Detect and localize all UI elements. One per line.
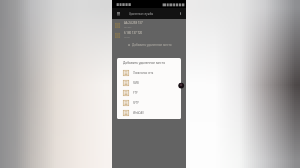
staticText: Добавить удаленное место: [132, 43, 172, 47]
staticText: Локальная сеть: [133, 71, 154, 75]
staticText: AA 24 258 137: [124, 21, 143, 25]
staticText: FTP: [133, 91, 138, 95]
staticText: Удаленные службы: [129, 12, 154, 16]
staticText: yandex: [124, 26, 132, 29]
button[interactable]: Menu: [114, 9, 123, 18]
staticText: Добавить удаленное место: [123, 61, 166, 65]
staticText: cloud: [124, 36, 130, 39]
button[interactable]: WebDAV: [117, 108, 181, 118]
button[interactable]: More options: [176, 9, 185, 18]
button[interactable]: AA 24 258 137: [112, 20, 186, 30]
staticText: WebDAV: [133, 111, 144, 115]
button[interactable]: Локальная сеть: [117, 68, 181, 78]
button[interactable]: SFTP: [117, 98, 181, 108]
button[interactable]: Добавить удаленное место: [112, 40, 186, 49]
button[interactable]: SMB: [117, 78, 181, 88]
button[interactable]: FTP: [117, 88, 181, 98]
staticText: SFTP: [133, 101, 139, 105]
button[interactable]: 6 180 137 720: [112, 30, 186, 40]
staticText: 6 180 137 720: [124, 31, 143, 35]
staticText: SMB: [133, 81, 139, 85]
